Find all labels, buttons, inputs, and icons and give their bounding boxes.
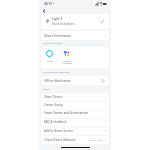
button[interactable]: Back (41, 8, 47, 14)
staticText: Offline Notification (44, 79, 71, 83)
staticText: Device Information (44, 34, 72, 38)
button[interactable]: Alexa (41, 49, 58, 62)
button[interactable]: Device Information (41, 31, 109, 40)
staticText: Third-party Control (43, 42, 63, 45)
button[interactable]: Create Group (41, 101, 109, 109)
staticText: Device Offline Notification (43, 71, 70, 74)
staticText: Room:Study Room (52, 22, 75, 26)
staticText: Add to Home Screen (44, 129, 73, 133)
staticText: Google Assistant (62, 59, 72, 65)
staticText: Check Now (89, 138, 103, 141)
staticText: FAQ & Feedback (44, 120, 67, 124)
staticText: Share Device (44, 95, 63, 99)
button[interactable]: Check Device Network (41, 135, 109, 144)
button[interactable]: Offline Notification (41, 76, 109, 85)
staticText: Create Group (44, 103, 63, 107)
button[interactable]: FAQ & Feedback (41, 117, 109, 126)
button[interactable]: Add to Home Screen (41, 126, 109, 135)
button[interactable]: Google Assistant (58, 49, 75, 65)
staticText: 04:19 (44, 2, 52, 6)
staticText: Others (43, 88, 51, 91)
staticText: Smart Scenes and Automations (44, 111, 89, 115)
button[interactable]: Smart Scenes and Automations (41, 109, 109, 117)
button[interactable]: Share Device (41, 93, 109, 101)
staticText: Check Device Network (44, 138, 76, 142)
staticText: Alexa (47, 59, 53, 62)
button[interactable]: Light 3 (41, 14, 109, 29)
staticText: Light 3 (52, 17, 63, 21)
